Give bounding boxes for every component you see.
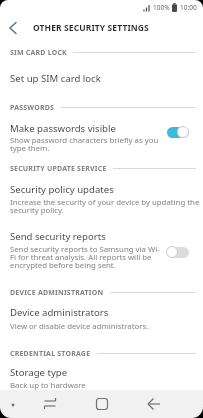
button[interactable]	[41, 395, 59, 413]
button[interactable]	[0, 364, 203, 390]
staticText: Back up to hardware	[10, 380, 86, 391]
button[interactable]	[145, 395, 163, 413]
staticText: 10:00	[180, 3, 197, 12]
staticText: Device administrators	[10, 306, 109, 319]
staticText: Send security reports to Samsung via Wi-…	[10, 244, 160, 271]
button[interactable]	[166, 245, 189, 259]
button[interactable]	[9, 401, 17, 409]
button[interactable]	[93, 395, 111, 413]
button[interactable]	[0, 230, 203, 272]
button[interactable]	[0, 182, 203, 214]
staticText: Set up SIM card lock	[10, 72, 101, 85]
staticText: 100%	[153, 3, 170, 12]
staticText: SIM CARD LOCK	[10, 48, 67, 57]
button[interactable]	[0, 15, 26, 41]
staticText: PASSWORDS	[10, 103, 55, 112]
staticText: OTHER SECURITY SETTINGS	[33, 22, 149, 34]
staticText: Security policy updates	[10, 183, 114, 196]
button[interactable]	[166, 125, 189, 139]
button[interactable]	[0, 303, 203, 329]
staticText: Increase the security of your device by …	[10, 197, 200, 216]
staticText: Send security reports	[10, 230, 106, 243]
staticText: Make passwords visible	[10, 122, 116, 135]
button[interactable]	[0, 66, 203, 90]
staticText: SECURITY UPDATE SERVICE	[10, 164, 107, 173]
staticText: Show password characters briefly as you …	[10, 135, 159, 154]
button[interactable]	[0, 119, 203, 151]
staticText: DEVICE ADMINISTRATION	[10, 288, 104, 297]
staticText: Storage type	[10, 366, 68, 379]
staticText: View or disable device administrators.	[10, 321, 149, 332]
staticText: CREDENTIAL STORAGE	[10, 349, 91, 358]
